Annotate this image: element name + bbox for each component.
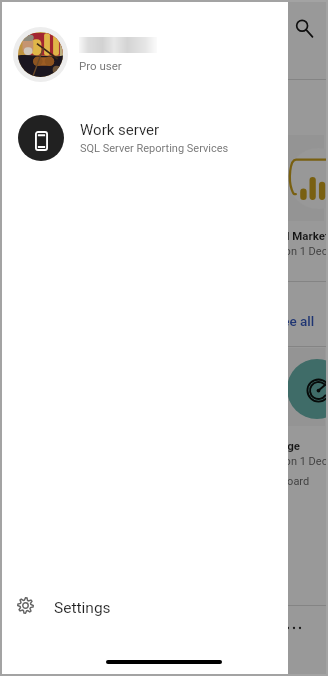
button[interactable] — [171, 348, 325, 426]
staticText: Settings — [54, 599, 111, 617]
staticText: Modified on 1 Dec — [239, 455, 328, 468]
button[interactable]: See all — [274, 313, 315, 329]
button[interactable]: Pro user — [0, 0, 288, 100]
staticText: Work server — [80, 121, 160, 139]
button[interactable]: Work server — [0, 103, 288, 175]
button[interactable] — [170, 135, 324, 221]
staticText: Sales and Marketing — [239, 229, 328, 242]
staticText: Dashboard — [256, 475, 310, 488]
staticText: Modified on 1 Dec — [239, 245, 328, 258]
button[interactable]: More — [278, 612, 310, 644]
staticText: Retail Usage — [235, 439, 301, 452]
staticText: SQL Server Reporting Services — [80, 142, 229, 155]
staticText: Pro user — [79, 59, 122, 72]
button[interactable]: Settings — [0, 581, 288, 629]
button[interactable]: Search — [288, 12, 320, 44]
